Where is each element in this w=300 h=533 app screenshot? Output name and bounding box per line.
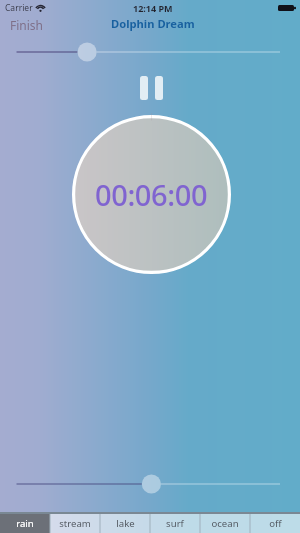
button[interactable]: Slider bbox=[0, 468, 300, 498]
staticText: rain bbox=[16, 517, 34, 530]
button[interactable]: Pause bbox=[135, 70, 167, 106]
staticText: 12:14 PM bbox=[133, 2, 173, 14]
button[interactable]: surf bbox=[150, 512, 200, 533]
button[interactable]: ocean bbox=[200, 512, 250, 533]
staticText: Carrier bbox=[5, 2, 33, 14]
staticText: surf bbox=[166, 517, 184, 530]
staticText: stream bbox=[59, 517, 91, 530]
button[interactable]: stream bbox=[50, 512, 100, 533]
staticText: Dolphin Dream bbox=[111, 16, 195, 31]
staticText: Finish bbox=[10, 17, 44, 33]
button[interactable]: lake bbox=[100, 512, 150, 533]
staticText: ocean bbox=[211, 517, 239, 530]
staticText: lake bbox=[116, 517, 135, 530]
button[interactable]: 00:06:00 bbox=[72, 115, 231, 274]
staticText: off bbox=[269, 517, 282, 530]
button[interactable]: Slider bbox=[0, 0, 300, 70]
button[interactable]: Finish bbox=[0, 14, 54, 38]
button[interactable]: off bbox=[250, 512, 300, 533]
button[interactable]: rain bbox=[0, 512, 50, 533]
staticText: 00:06:00 bbox=[95, 175, 208, 214]
